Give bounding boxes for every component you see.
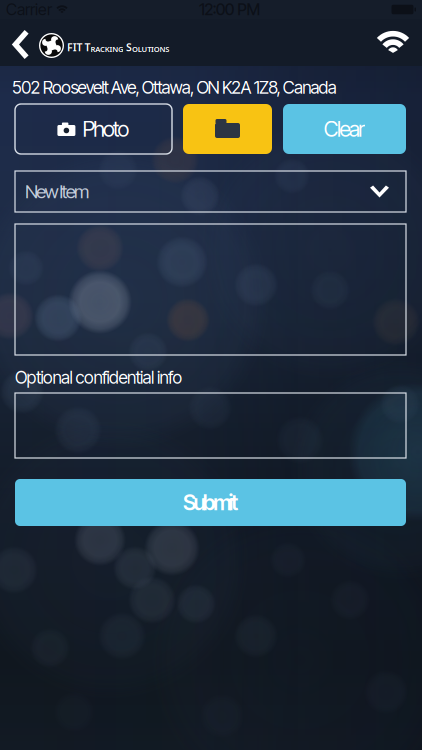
button[interactable]: Submit [15, 479, 406, 526]
staticText: RACKING [90, 44, 124, 54]
staticText: FIT [67, 40, 82, 54]
staticText: 12:00 PM [199, 0, 260, 19]
staticText: Submit [183, 490, 238, 515]
staticText: Clear [324, 116, 365, 142]
staticText: T [84, 40, 90, 54]
staticText: Photo [82, 116, 130, 142]
staticText: Carrier [6, 0, 52, 19]
button[interactable]: New Item [15, 171, 406, 212]
staticText [82, 44, 84, 54]
button[interactable]: Notes [15, 224, 406, 355]
button[interactable]: Wi-Fi status [371, 18, 415, 65]
staticText: New Item [25, 180, 89, 203]
staticText: OLUTIONS [132, 44, 169, 54]
button[interactable]: Optional confidential info field [15, 393, 406, 458]
button[interactable]: Back [1, 21, 39, 68]
staticText: S [126, 40, 132, 54]
staticText: Optional confidential info [15, 367, 182, 388]
button[interactable]: Photo [15, 104, 172, 154]
button[interactable]: Clear [283, 104, 406, 154]
button[interactable]: Browse files [183, 104, 272, 154]
staticText: 502 Roosevelt Ave, Ottawa, ON K2A 1Z8, C… [12, 77, 337, 98]
